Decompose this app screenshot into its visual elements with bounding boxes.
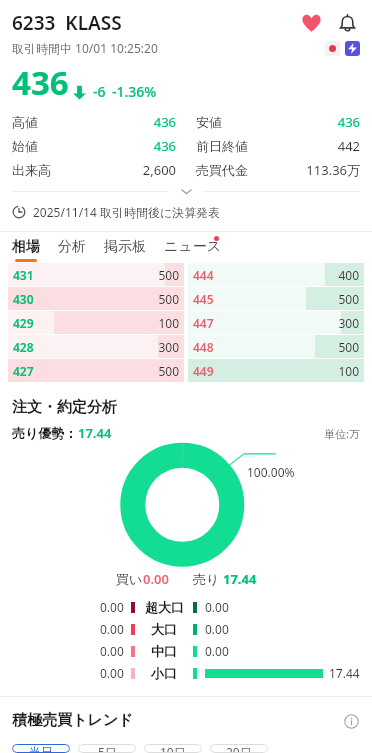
- button[interactable]: 相場: [12, 238, 58, 262]
- button[interactable]: Expand details: [0, 179, 372, 203]
- staticText: 0.00: [100, 643, 124, 659]
- staticText: 400: [214, 267, 359, 283]
- button[interactable]: ニュース: [164, 238, 221, 262]
- button[interactable]: 447: [188, 311, 364, 334]
- staticText: 444: [193, 267, 214, 283]
- staticText: 500: [34, 267, 179, 283]
- staticText: 113.36万: [248, 161, 360, 179]
- staticText: 安値: [196, 114, 222, 130]
- staticText: -1.36%: [112, 82, 157, 101]
- staticText: 430: [13, 291, 34, 307]
- staticText: 買い: [116, 571, 143, 587]
- staticText: 500: [214, 339, 359, 355]
- button[interactable]: 431: [8, 263, 184, 286]
- staticText: 17.44: [223, 570, 257, 588]
- staticText: 0.00: [205, 621, 229, 637]
- staticText: 500: [34, 291, 179, 307]
- staticText: 449: [193, 363, 214, 379]
- button[interactable]: 20日: [210, 744, 268, 753]
- staticText: 2025/11/14 取引時間後に決算発表: [33, 204, 221, 220]
- staticText: 445: [193, 291, 214, 307]
- staticText: 中口: [151, 643, 177, 659]
- staticText: 5日: [98, 744, 117, 753]
- staticText: 0.00: [100, 621, 124, 637]
- staticText: 20日: [226, 744, 252, 753]
- button[interactable]: 10日: [144, 744, 202, 753]
- button[interactable]: 444: [188, 263, 364, 286]
- button[interactable]: Favorite: [296, 8, 326, 38]
- button[interactable]: 448: [188, 335, 364, 358]
- staticText: 0.00: [100, 599, 124, 615]
- staticText: 0.00: [100, 665, 124, 681]
- staticText: 442: [248, 137, 360, 155]
- staticText: 436: [38, 113, 176, 131]
- staticText: 6233 KLASS: [12, 10, 296, 36]
- staticText: 始値: [12, 138, 38, 154]
- staticText: 17.44: [329, 665, 360, 681]
- staticText: 掲示板: [104, 238, 146, 256]
- button[interactable]: 掲示板: [104, 238, 164, 262]
- staticText: 注文・約定分析: [12, 398, 117, 417]
- staticText: 当日: [29, 744, 53, 753]
- button[interactable]: 429: [8, 311, 184, 334]
- button[interactable]: Realtime level 2: [345, 41, 360, 56]
- staticText: 10日: [160, 744, 186, 753]
- staticText: 売り優勢：: [12, 425, 78, 441]
- staticText: 436: [38, 137, 176, 155]
- staticText: 相場: [12, 238, 40, 256]
- staticText: 0.00: [205, 599, 229, 615]
- staticText: 大口: [151, 621, 177, 637]
- staticText: 100: [214, 363, 359, 379]
- staticText: 436: [12, 60, 69, 105]
- staticText: 分析: [58, 238, 86, 256]
- staticText: 100.00%: [247, 464, 295, 480]
- button[interactable]: 分析: [58, 238, 104, 262]
- staticText: 2,600: [51, 161, 176, 179]
- button[interactable]: 2025/11/14 取引時間後に決算発表: [0, 203, 372, 231]
- button[interactable]: 445: [188, 287, 364, 310]
- button[interactable]: 当日: [12, 744, 70, 753]
- staticText: 積極売買トレンド: [12, 711, 342, 730]
- staticText: 428: [13, 339, 34, 355]
- staticText: 300: [214, 315, 359, 331]
- staticText: 300: [34, 339, 179, 355]
- staticText: 427: [13, 363, 34, 379]
- staticText: 取引時間中 10/01 10:25:20: [12, 40, 325, 56]
- staticText: 448: [193, 339, 214, 355]
- staticText: 出来高: [12, 162, 51, 178]
- staticText: 超大口: [145, 599, 184, 615]
- staticText: 単位:万: [324, 426, 360, 441]
- button[interactable]: 449: [188, 359, 364, 382]
- staticText: 売り: [193, 571, 220, 587]
- button[interactable]: 430: [8, 287, 184, 310]
- staticText: 前日終値: [196, 138, 248, 154]
- staticText: 429: [13, 315, 34, 331]
- staticText: 高値: [12, 114, 38, 130]
- staticText: 500: [214, 291, 359, 307]
- staticText: 447: [193, 315, 214, 331]
- staticText: 売買代金: [196, 162, 248, 178]
- staticText: ニュース: [164, 238, 221, 256]
- button[interactable]: Japan market: [325, 41, 340, 56]
- button[interactable]: 427: [8, 359, 184, 382]
- button[interactable]: Info: [342, 712, 360, 730]
- staticText: 436: [222, 113, 360, 131]
- button[interactable]: 5日: [78, 744, 136, 753]
- button[interactable]: 428: [8, 335, 184, 358]
- staticText: 431: [13, 267, 34, 283]
- staticText: 17.44: [78, 424, 112, 442]
- staticText: 小口: [151, 665, 177, 681]
- staticText: 500: [34, 363, 179, 379]
- staticText: -6: [93, 82, 106, 101]
- button[interactable]: Alerts: [332, 8, 362, 38]
- staticText: 100: [34, 315, 179, 331]
- staticText: 0.00: [205, 643, 229, 659]
- staticText: 0.00: [143, 570, 169, 588]
